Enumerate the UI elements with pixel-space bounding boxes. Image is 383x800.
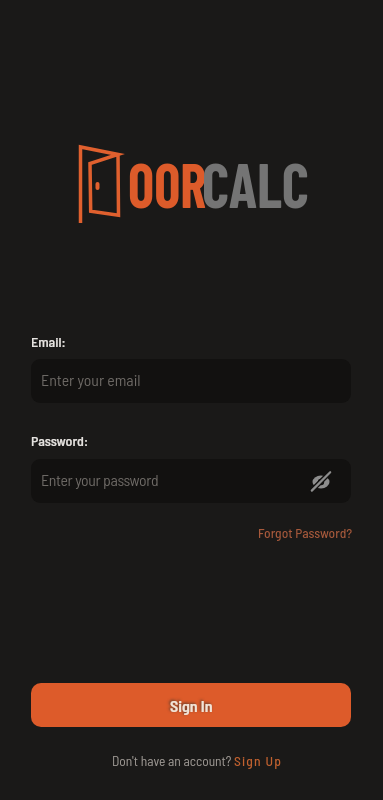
staticText: Enter your password: [41, 470, 159, 489]
staticText: CALC: [202, 145, 309, 221]
staticText: Enter your email: [41, 370, 141, 389]
staticText: Sign In: [170, 696, 213, 715]
button[interactable]: Enter your email: [31, 359, 351, 403]
staticText: Password:: [31, 432, 89, 449]
button[interactable]: Sign In: [31, 683, 351, 727]
button[interactable]: Enter your password: [31, 459, 351, 503]
staticText: Email:: [31, 333, 66, 350]
button[interactable]: [309, 470, 333, 494]
button[interactable]: Sign Up: [234, 752, 283, 768]
button[interactable]: Forgot Password?: [258, 524, 353, 540]
staticText: OOR: [128, 145, 207, 221]
staticText: Don't have an account?: [112, 752, 232, 768]
